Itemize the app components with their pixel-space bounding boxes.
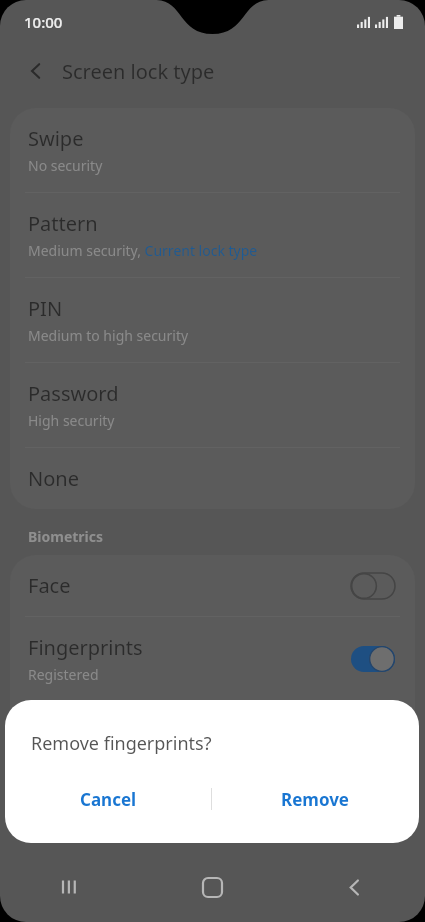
button[interactable]: Toggle Face <box>351 573 395 599</box>
button[interactable]: Swipe <box>10 108 415 192</box>
staticText: 10:00 <box>24 12 63 32</box>
staticText: Pattern <box>28 210 98 237</box>
staticText: Swipe <box>28 125 84 152</box>
staticText: Face <box>28 572 71 599</box>
button[interactable]: Cancel <box>5 771 211 827</box>
button[interactable]: Back <box>283 852 425 922</box>
staticText: Fingerprints <box>28 634 143 661</box>
staticText: Medium to high security <box>28 326 189 345</box>
button[interactable]: Back <box>14 49 58 93</box>
button[interactable]: Recents <box>0 852 141 922</box>
button[interactable]: None <box>10 448 415 509</box>
staticText: None <box>28 465 79 492</box>
staticText: Cancel <box>80 788 137 811</box>
staticText: Password <box>28 380 119 407</box>
staticText: Remove <box>281 788 350 811</box>
staticText: Screen lock type <box>62 58 215 85</box>
button[interactable]: PIN <box>10 278 415 362</box>
staticText: Registered <box>28 665 99 684</box>
button[interactable]: Fingerprints <box>10 617 415 701</box>
button[interactable]: Password <box>10 363 415 447</box>
button[interactable]: Toggle Fingerprints <box>351 646 395 672</box>
button[interactable]: Home <box>141 852 283 922</box>
button[interactable]: Pattern <box>10 193 415 277</box>
staticText: No security <box>28 156 103 175</box>
staticText: PIN <box>28 295 63 322</box>
staticText: Remove fingerprints? <box>31 731 212 756</box>
staticText: High security <box>28 411 115 430</box>
button[interactable]: Face <box>10 555 415 616</box>
staticText: Biometrics <box>28 527 104 546</box>
staticText: Medium security, Current lock type <box>28 241 258 260</box>
button[interactable]: Remove <box>212 771 419 827</box>
